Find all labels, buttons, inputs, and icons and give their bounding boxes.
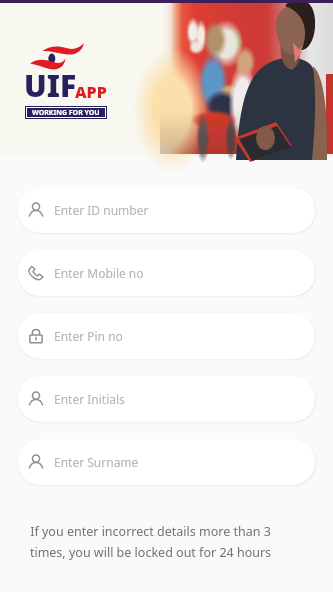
staticText: APP: [75, 81, 107, 103]
staticText: WORKING FOR YOU: [32, 108, 100, 117]
button[interactable]: Enter Pin no: [18, 313, 315, 359]
staticText: If you enter incorrect details more than…: [22, 523, 279, 560]
staticText: Enter Surname: [54, 454, 139, 470]
staticText: UIF: [24, 65, 77, 106]
button[interactable]: Enter Surname: [18, 439, 315, 485]
staticText: Enter Initials: [54, 391, 125, 407]
button[interactable]: Enter Mobile no: [18, 250, 315, 296]
staticText: Enter Mobile no: [54, 265, 144, 281]
staticText: Enter ID number: [54, 202, 149, 218]
button[interactable]: Enter ID number: [18, 187, 315, 233]
staticText: Enter Pin no: [54, 328, 123, 344]
button[interactable]: Enter Initials: [18, 376, 315, 422]
